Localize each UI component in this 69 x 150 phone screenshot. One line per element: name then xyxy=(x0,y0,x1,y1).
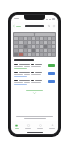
button[interactable]: Select fare xyxy=(48,64,55,67)
button[interactable]: Select fare xyxy=(11,79,58,87)
button[interactable]: Search xyxy=(47,24,51,28)
button[interactable]: Saved xyxy=(34,121,46,131)
button[interactable]: Trips xyxy=(22,121,34,131)
button[interactable]: Home xyxy=(11,121,22,131)
button[interactable]: Select fare xyxy=(48,80,55,83)
button[interactable]: Back xyxy=(11,23,23,29)
button[interactable]: Select fare xyxy=(48,72,55,75)
button[interactable]: Profile xyxy=(46,121,58,131)
button[interactable]: More options xyxy=(52,24,56,28)
button[interactable]: Select fare xyxy=(11,63,58,71)
button[interactable] xyxy=(11,90,58,94)
button[interactable]: Select fare xyxy=(11,71,58,79)
